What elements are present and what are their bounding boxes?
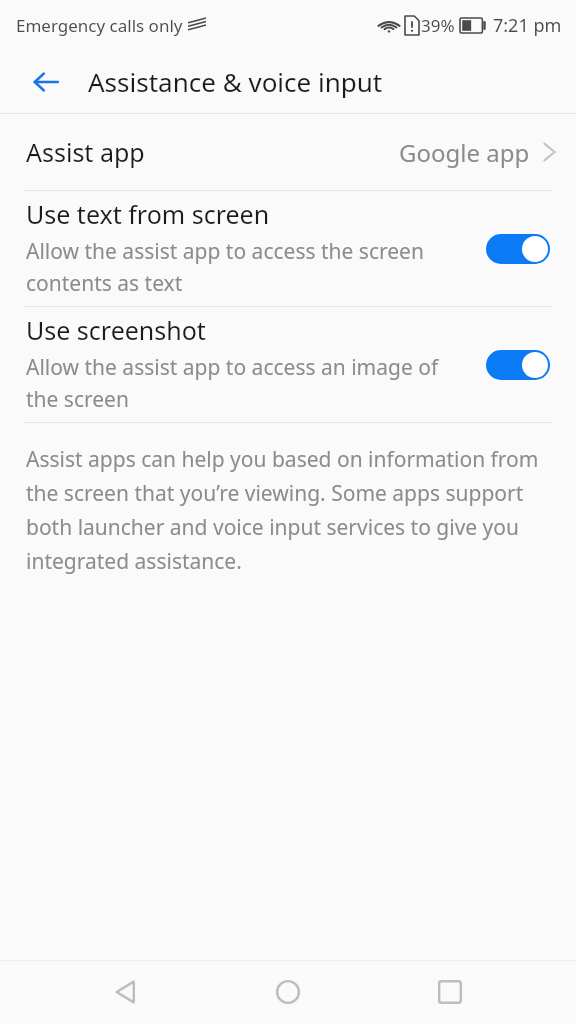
button[interactable]: Toggle bbox=[486, 350, 550, 380]
staticText: both launcher and voice input services t… bbox=[26, 513, 520, 542]
staticText: Use screenshot bbox=[26, 313, 206, 347]
staticText: Assist apps can help you based on inform… bbox=[26, 445, 539, 474]
button[interactable]: Use text from screen bbox=[0, 191, 576, 306]
staticText: Assist app bbox=[26, 135, 145, 169]
button[interactable]: Back bbox=[90, 960, 162, 1024]
staticText: integrated assistance. bbox=[26, 547, 242, 576]
staticText: Google app bbox=[399, 136, 530, 169]
staticText: 7:21 pm bbox=[493, 13, 562, 38]
button[interactable]: Use screenshot bbox=[0, 307, 576, 422]
button[interactable]: Back bbox=[18, 54, 74, 110]
button[interactable]: Recents bbox=[414, 960, 486, 1024]
button[interactable]: Home bbox=[252, 960, 324, 1024]
staticText: 39% bbox=[421, 14, 455, 37]
staticText: Assistance & voice input bbox=[88, 64, 383, 99]
staticText: the screen bbox=[26, 385, 129, 414]
button[interactable]: Assist app bbox=[0, 114, 576, 190]
staticText: Emergency calls only bbox=[16, 14, 183, 37]
staticText: Allow the assist app to access an image … bbox=[26, 353, 439, 382]
staticText: Allow the assist app to access the scree… bbox=[26, 237, 424, 266]
button[interactable]: Toggle bbox=[486, 234, 550, 264]
staticText: the screen that you’re viewing. Some app… bbox=[26, 479, 524, 508]
staticText: Use text from screen bbox=[26, 197, 270, 231]
staticText: contents as text bbox=[26, 269, 183, 298]
